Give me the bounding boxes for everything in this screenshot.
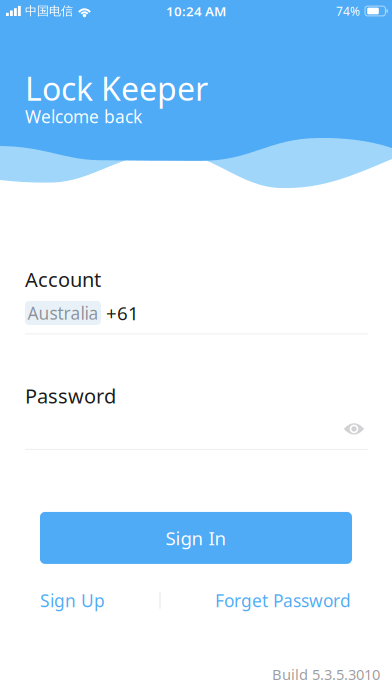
staticText: Account bbox=[25, 266, 101, 293]
staticText: +61 bbox=[106, 301, 139, 325]
staticText: Sign In bbox=[165, 525, 226, 550]
staticText: Lock Keeper bbox=[25, 67, 208, 109]
staticText: 74% bbox=[336, 3, 360, 19]
staticText: Password bbox=[25, 382, 116, 409]
staticText: Australia bbox=[27, 301, 98, 324]
staticText: Sign Up bbox=[40, 589, 105, 612]
button[interactable]: Sign Up bbox=[40, 589, 105, 612]
button[interactable]: Forget Password bbox=[215, 589, 351, 612]
staticText: 10:24 AM bbox=[166, 2, 226, 20]
staticText: Forget Password bbox=[215, 589, 351, 612]
button[interactable]: Sign In bbox=[40, 512, 352, 564]
staticText: 中国电信 bbox=[25, 4, 73, 18]
staticText: Welcome back bbox=[25, 105, 142, 128]
staticText: Build 5.3.5.3010 bbox=[272, 664, 380, 684]
button[interactable]: Show password bbox=[340, 418, 368, 440]
